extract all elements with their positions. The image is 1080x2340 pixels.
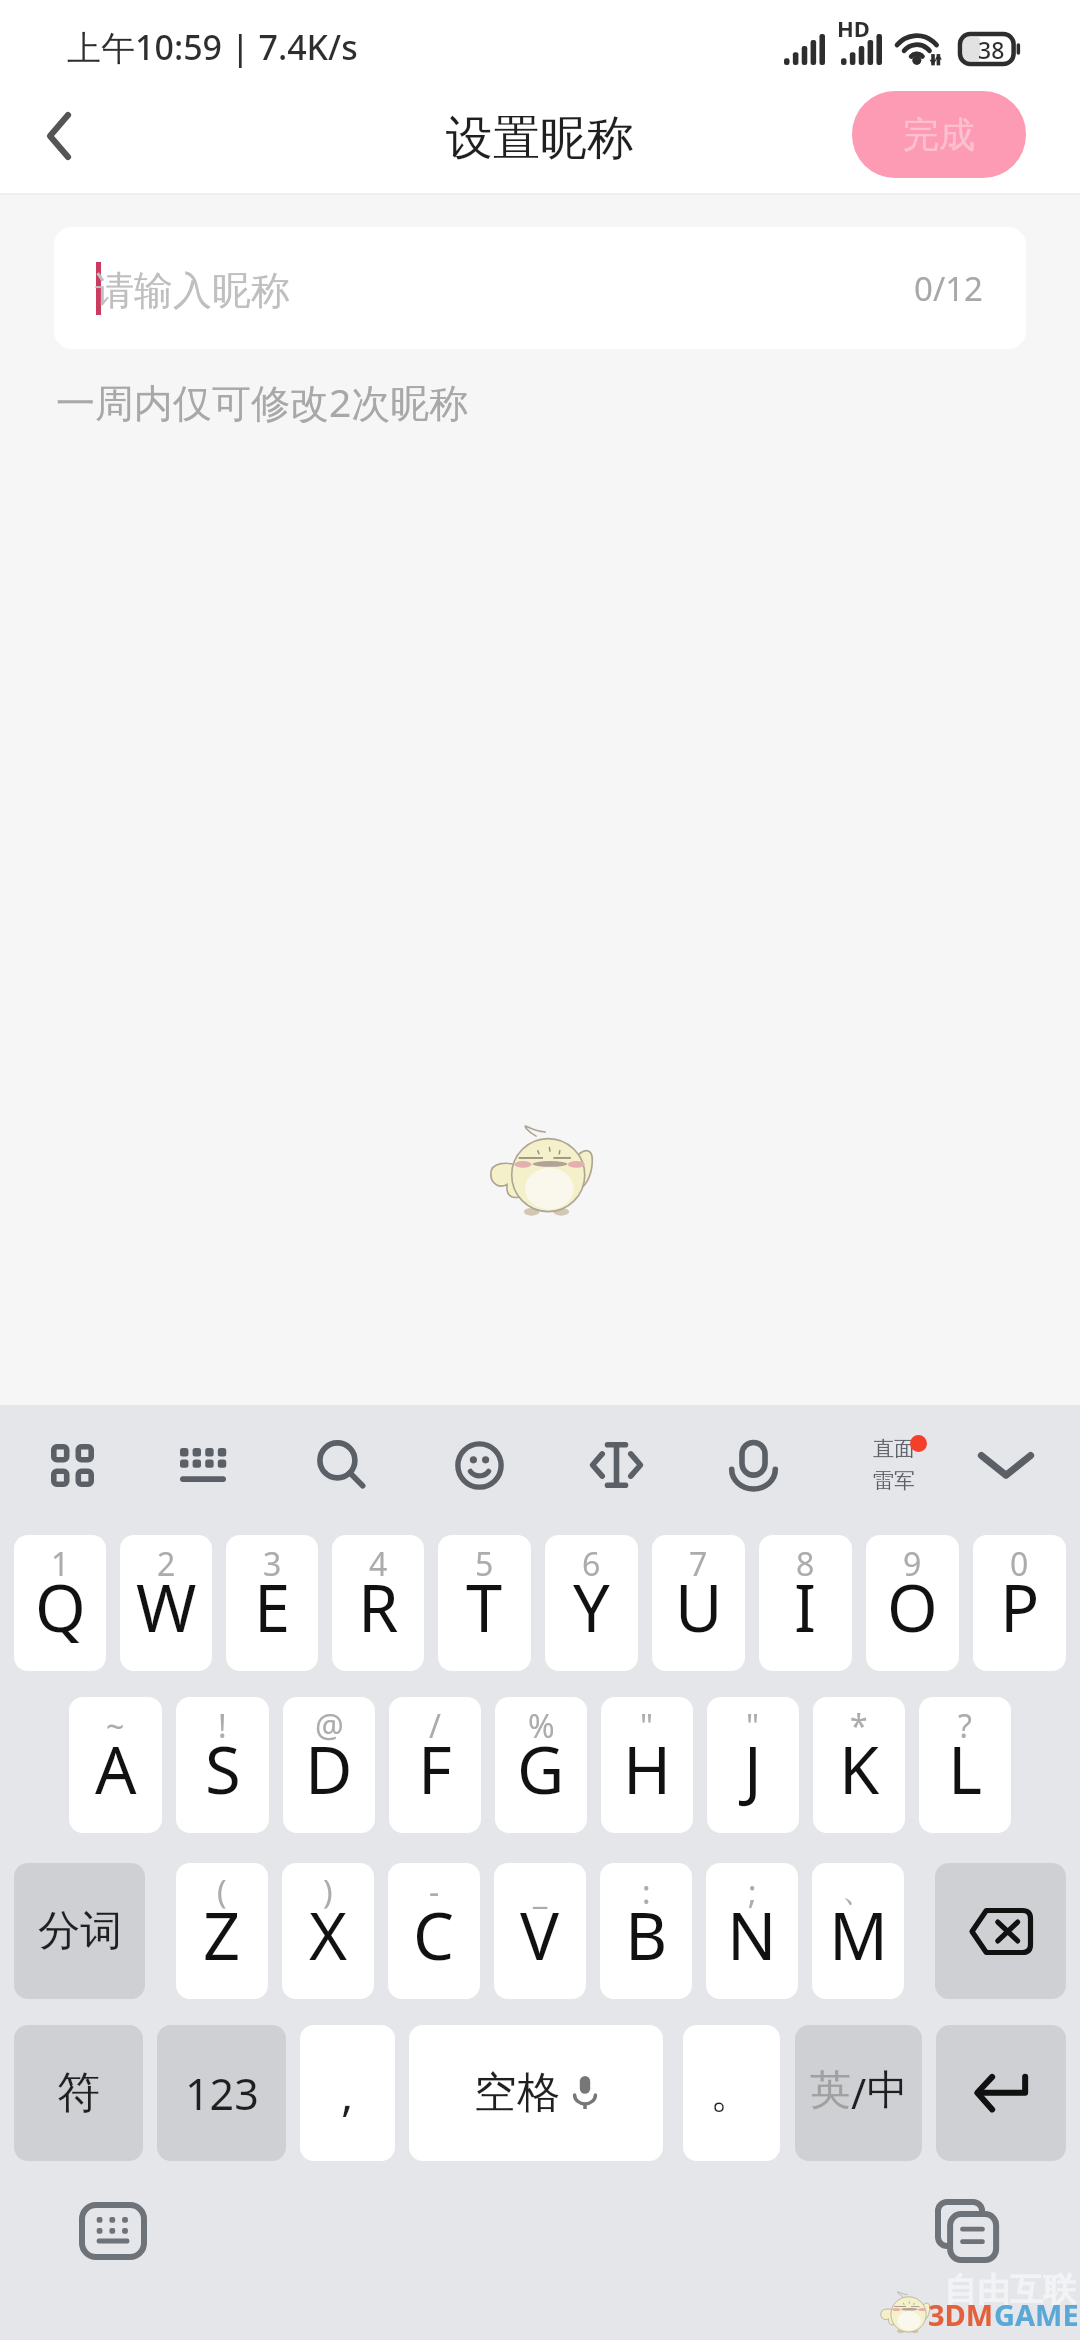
staticText: Y bbox=[573, 1563, 610, 1652]
button[interactable]: 7 bbox=[652, 1535, 745, 1671]
button[interactable]: 0 bbox=[973, 1535, 1066, 1671]
staticText: 分词 bbox=[38, 1905, 122, 1958]
button[interactable]: 5 bbox=[438, 1535, 531, 1671]
staticText: T bbox=[466, 1563, 503, 1652]
staticText: O bbox=[887, 1563, 938, 1652]
staticText: E bbox=[254, 1563, 291, 1652]
staticText: F bbox=[418, 1725, 452, 1814]
button[interactable]: ~ bbox=[69, 1697, 162, 1833]
staticText: B bbox=[625, 1891, 668, 1980]
staticText: K bbox=[839, 1725, 880, 1814]
button[interactable]: 返回 bbox=[0, 84, 118, 187]
button[interactable]: % bbox=[495, 1697, 587, 1833]
button[interactable]: 空格 bbox=[409, 2025, 663, 2161]
staticText: 0 bbox=[1010, 1542, 1029, 1586]
button[interactable]: 键盘切换 bbox=[5, 1405, 140, 1525]
staticText: ( bbox=[217, 1870, 227, 1914]
button[interactable]: 4 bbox=[332, 1535, 424, 1671]
staticText: / bbox=[851, 2065, 867, 2121]
button[interactable]: , bbox=[300, 2025, 395, 2161]
staticText: " bbox=[640, 1704, 654, 1748]
staticText: L bbox=[948, 1725, 983, 1814]
staticText: 3 bbox=[263, 1542, 282, 1586]
button[interactable]: 符 bbox=[14, 2025, 143, 2161]
button[interactable]: ! bbox=[176, 1697, 269, 1833]
button[interactable]: " bbox=[601, 1697, 693, 1833]
button[interactable]: 剪贴板 bbox=[935, 2199, 998, 2262]
staticText: 、 bbox=[842, 1870, 874, 1910]
staticText: ? bbox=[958, 1704, 972, 1748]
staticText: 3DM bbox=[928, 2295, 994, 2334]
staticText: 上午10:59 | 7.4K/s bbox=[67, 24, 358, 70]
staticText: ; bbox=[748, 1870, 757, 1914]
button[interactable]: 回车 bbox=[936, 2025, 1066, 2161]
staticText: 38 bbox=[978, 34, 1005, 65]
staticText: Q bbox=[35, 1563, 86, 1652]
staticText: 空格 bbox=[474, 2066, 560, 2120]
staticText: 。 bbox=[710, 2066, 753, 2120]
staticText: 一周内仅可修改2次昵称 bbox=[56, 375, 469, 428]
button[interactable]: ) bbox=[282, 1863, 374, 1999]
staticText: - bbox=[429, 1870, 440, 1914]
staticText: N bbox=[727, 1891, 777, 1980]
button[interactable]: 2 bbox=[120, 1535, 212, 1671]
button[interactable]: 删除 bbox=[935, 1863, 1066, 1999]
button[interactable]: 隐藏键盘 bbox=[79, 2202, 147, 2260]
button[interactable]: 、 bbox=[812, 1863, 904, 1999]
staticText: 6 bbox=[582, 1542, 601, 1586]
button[interactable]: 分词 bbox=[14, 1863, 145, 1999]
staticText: J bbox=[744, 1725, 762, 1814]
button[interactable]: 英 bbox=[795, 2025, 922, 2161]
staticText: 直面 bbox=[873, 1436, 915, 1462]
button[interactable]: 收起键盘 bbox=[938, 1405, 1073, 1525]
button[interactable]: 完成 bbox=[852, 91, 1026, 178]
staticText: HD bbox=[837, 13, 870, 43]
staticText: 2 bbox=[157, 1542, 176, 1586]
staticText: U bbox=[675, 1563, 723, 1652]
button[interactable]: : bbox=[600, 1863, 692, 1999]
staticText: ) bbox=[323, 1870, 333, 1914]
button[interactable]: 语音输入 bbox=[686, 1405, 821, 1525]
staticText: 5 bbox=[475, 1542, 494, 1586]
staticText: S bbox=[205, 1725, 241, 1814]
button[interactable]: 123 bbox=[157, 2025, 286, 2161]
staticText: 0/12 bbox=[914, 266, 983, 311]
button[interactable]: @ bbox=[283, 1697, 375, 1833]
button[interactable]: 直面雷军 bbox=[826, 1405, 961, 1525]
staticText: M bbox=[829, 1891, 888, 1980]
staticText: R bbox=[358, 1563, 399, 1652]
button[interactable]: ( bbox=[176, 1863, 268, 1999]
staticText: I bbox=[794, 1563, 817, 1652]
button[interactable]: 3 bbox=[226, 1535, 318, 1671]
staticText: X bbox=[309, 1891, 348, 1980]
button[interactable]: ; bbox=[706, 1863, 798, 1999]
button[interactable]: 数字键盘 bbox=[135, 1405, 270, 1525]
button[interactable]: 光标移动 bbox=[549, 1405, 684, 1525]
button[interactable]: _ bbox=[494, 1863, 586, 1999]
staticText: V bbox=[520, 1891, 560, 1980]
button[interactable]: - bbox=[388, 1863, 480, 1999]
staticText: 4 bbox=[369, 1542, 388, 1586]
button[interactable]: 6 bbox=[545, 1535, 638, 1671]
staticText: 中 bbox=[867, 2065, 908, 2117]
button[interactable]: 1 bbox=[14, 1535, 106, 1671]
button[interactable]: 搜索 bbox=[274, 1405, 409, 1525]
staticText: C bbox=[413, 1891, 455, 1980]
button[interactable]: 请输入昵称 bbox=[54, 227, 1026, 349]
staticText: H bbox=[623, 1725, 672, 1814]
button[interactable]: / bbox=[389, 1697, 481, 1833]
button[interactable]: * bbox=[813, 1697, 905, 1833]
staticText: P bbox=[1000, 1563, 1040, 1652]
button[interactable]: 8 bbox=[759, 1535, 852, 1671]
staticText: : bbox=[642, 1870, 651, 1914]
button[interactable]: " bbox=[707, 1697, 799, 1833]
staticText: @ bbox=[315, 1704, 344, 1748]
staticText: / bbox=[429, 1704, 441, 1748]
button[interactable]: 。 bbox=[683, 2025, 780, 2161]
staticText: ! bbox=[218, 1704, 227, 1748]
staticText: * bbox=[850, 1704, 868, 1748]
button[interactable]: ? bbox=[919, 1697, 1011, 1833]
button[interactable]: 表情 bbox=[412, 1405, 547, 1525]
staticText: 7 bbox=[689, 1542, 708, 1586]
button[interactable]: 9 bbox=[866, 1535, 959, 1671]
